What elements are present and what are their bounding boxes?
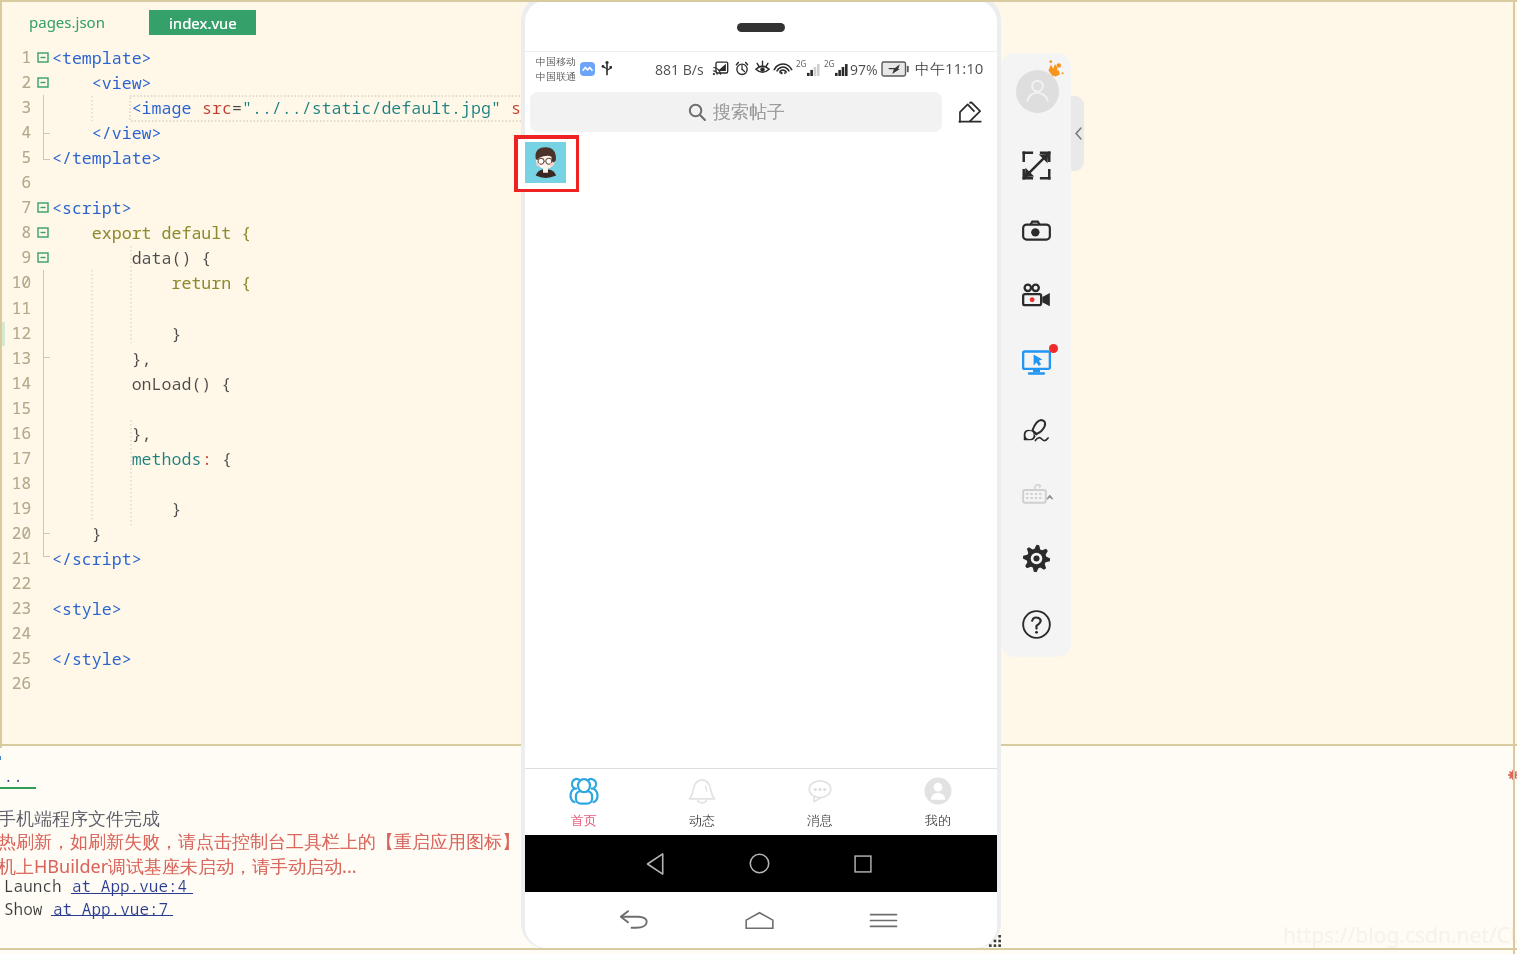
staticText: onLoad() { <box>52 372 232 395</box>
staticText: 3 <box>0 96 31 118</box>
button[interactable]: Back <box>599 892 669 948</box>
staticText: 热刷新，如刷新失败，请点击控制台工具栏上的【重启应用图标】 <box>0 831 520 854</box>
button[interactable]: 我的 <box>879 769 997 835</box>
staticText: 24 <box>0 622 31 644</box>
button[interactable]: Collapse toolbar <box>1066 96 1084 171</box>
staticText: 19 <box>0 497 31 519</box>
staticText: 机上HBuilder调试基座未启动，请手动启动... <box>0 854 357 879</box>
staticText: 10 <box>0 271 31 293</box>
staticText: }, <box>52 347 152 370</box>
button[interactable]: 搜索帖子 <box>530 92 942 132</box>
staticText: { <box>212 447 232 470</box>
staticText: pages.json <box>29 12 105 32</box>
staticText: 首页 <box>571 812 597 828</box>
button[interactable]: Mirror screen <box>1006 334 1066 390</box>
staticText: 2G <box>796 58 807 69</box>
staticText: 7 <box>0 196 31 218</box>
staticText: 我的 <box>925 812 951 828</box>
staticText: 26 <box>0 672 31 694</box>
button[interactable]: Fullscreen <box>1006 137 1066 193</box>
staticText: index.vue <box>169 13 237 33</box>
button[interactable]: index.vue <box>149 10 256 35</box>
staticText: 14 <box>0 372 31 394</box>
staticText: 中国联通 <box>536 70 576 83</box>
button[interactable]: Help <box>1006 596 1066 652</box>
button[interactable]: Keyboard <box>1006 465 1066 521</box>
staticText: methods <box>52 447 202 470</box>
staticText: 9 <box>0 246 31 268</box>
staticText: 消息 <box>807 812 833 828</box>
staticText: = <box>232 96 242 119</box>
staticText: } <box>52 497 182 520</box>
staticText: s <box>501 96 521 119</box>
staticText: export default { <box>52 221 252 244</box>
button[interactable]: pages.json <box>23 9 111 35</box>
staticText: </style> <box>52 647 132 670</box>
staticText: 手机端程序文件完成 <box>0 808 160 831</box>
button[interactable]: Home <box>724 892 794 948</box>
staticText: 20 <box>0 522 31 544</box>
staticText: ... <box>0 765 23 787</box>
button[interactable]: Record video <box>1006 268 1066 324</box>
staticText: 25 <box>0 647 31 669</box>
staticText: at App.vue:4 <box>72 875 188 897</box>
staticText: 搜索帖子 <box>713 101 785 124</box>
staticText: data() { <box>52 246 212 269</box>
staticText: 2 <box>0 71 31 93</box>
staticText: 16 <box>0 422 31 444</box>
staticText: 12 <box>0 322 31 344</box>
button[interactable]: Settings <box>1006 530 1066 586</box>
staticText: 22 <box>0 572 31 594</box>
staticText: </view> <box>52 121 162 144</box>
staticText: 18 <box>0 472 31 494</box>
staticText: </script> <box>52 547 142 570</box>
staticText: Show <box>4 898 53 920</box>
staticText: } <box>52 522 102 545</box>
button[interactable]: 动态 <box>643 769 761 835</box>
staticText: 8 <box>0 221 31 243</box>
staticText: src <box>202 96 232 119</box>
button[interactable]: Paint <box>1006 399 1066 455</box>
staticText: "../../static/default.jpg" <box>242 96 501 119</box>
staticText: Launch <box>4 875 72 897</box>
staticText: 动态 <box>689 812 715 828</box>
staticText: https://blog.csdn.net/CUFEECR <box>1283 921 1517 950</box>
button[interactable]: Account <box>1016 70 1059 113</box>
staticText: </template> <box>52 146 162 169</box>
button[interactable]: Recents <box>828 835 898 892</box>
staticText: }, <box>52 422 152 445</box>
staticText: 11 <box>0 297 31 319</box>
staticText: 23 <box>0 597 31 619</box>
staticText: <image <box>52 96 202 119</box>
staticText: <view> <box>52 71 152 94</box>
staticText: } <box>52 322 182 345</box>
staticText: 1 <box>0 46 31 68</box>
staticText: 2G <box>824 58 835 69</box>
staticText: 97% <box>850 60 878 79</box>
staticText: 21 <box>0 547 31 569</box>
button[interactable]: Write post <box>950 95 990 133</box>
button[interactable]: Screenshot <box>1006 203 1066 259</box>
staticText: : <box>202 447 212 470</box>
button[interactable]: 消息 <box>761 769 879 835</box>
staticText: 5 <box>0 146 31 168</box>
staticText: 6 <box>0 171 31 193</box>
staticText: <template> <box>52 46 152 69</box>
button[interactable]: Home <box>724 835 794 892</box>
staticText: 中午11:10 <box>915 58 984 78</box>
staticText: 15 <box>0 397 31 419</box>
button[interactable]: 首页 <box>525 769 643 835</box>
staticText: <style> <box>52 597 122 620</box>
button[interactable]: Menu <box>848 892 918 948</box>
staticText: at App.vue:7 <box>53 898 169 920</box>
staticText: 4 <box>0 121 31 143</box>
staticText: return { <box>52 271 252 294</box>
staticText: 13 <box>0 347 31 369</box>
staticText: 17 <box>0 447 31 469</box>
staticText: 中国移动 <box>536 55 576 68</box>
staticText: 881 B/s <box>655 60 704 79</box>
button[interactable]: Back <box>620 835 690 892</box>
staticText: <script> <box>52 196 132 219</box>
